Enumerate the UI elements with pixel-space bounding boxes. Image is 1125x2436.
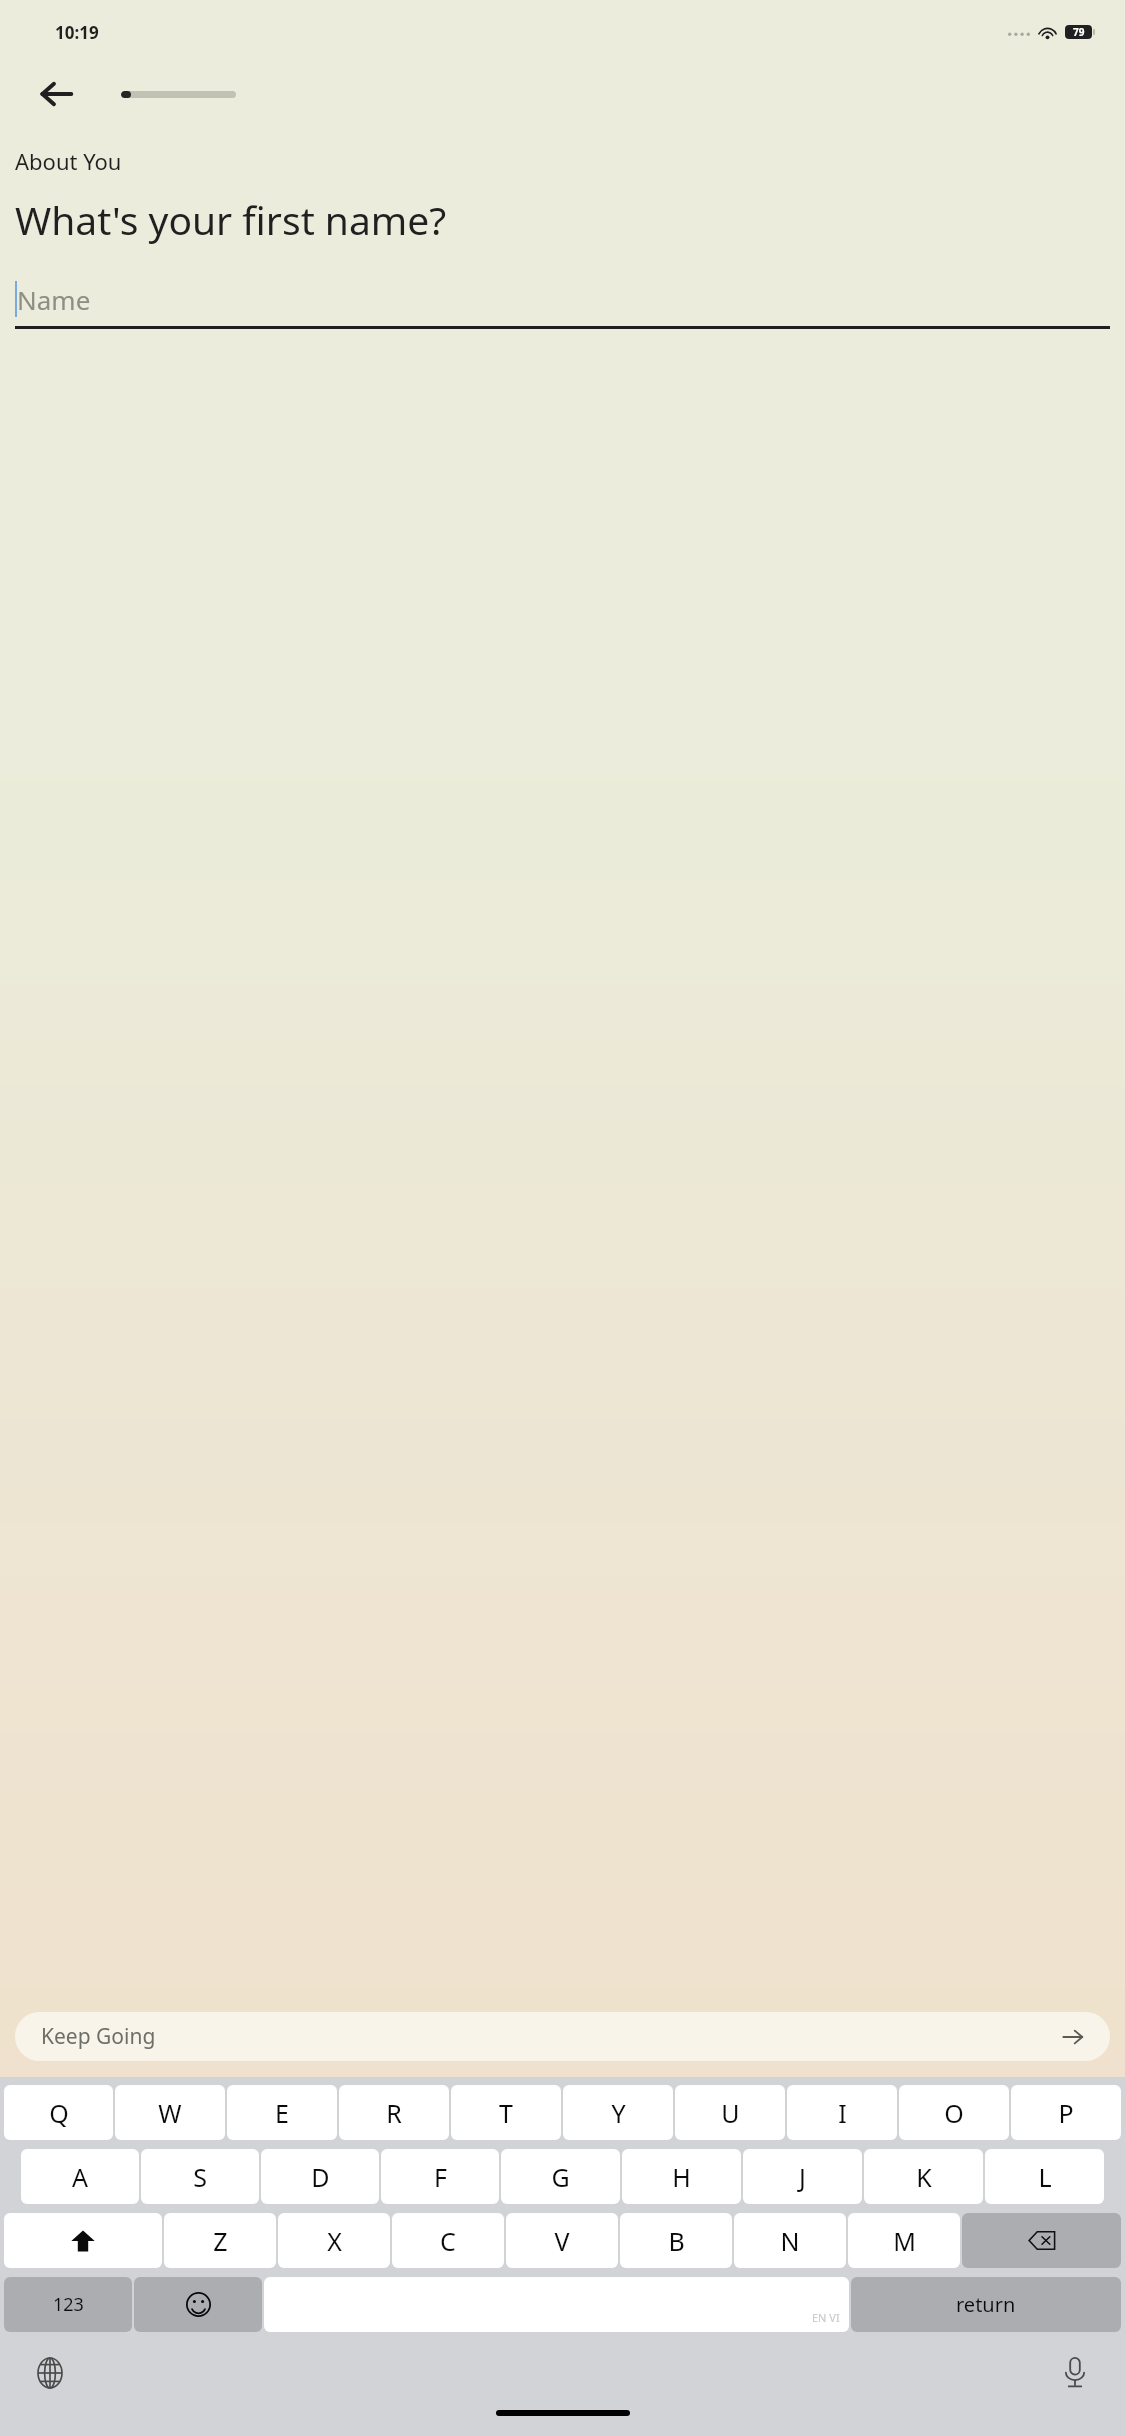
staticText: V [554, 2224, 570, 2258]
staticText: L [1038, 2160, 1052, 2194]
staticText: Name [17, 282, 91, 317]
button[interactable]: Emoji [134, 2277, 262, 2332]
button[interactable]: Z [164, 2213, 276, 2268]
staticText: D [311, 2160, 330, 2194]
button[interactable]: return [851, 2277, 1121, 2332]
staticText: R [386, 2096, 402, 2130]
button[interactable]: F [381, 2149, 499, 2204]
staticText: M [893, 2224, 916, 2258]
button[interactable]: N [734, 2213, 846, 2268]
staticText: N [780, 2224, 800, 2258]
button[interactable]: J [743, 2149, 862, 2204]
staticText: C [440, 2224, 456, 2258]
staticText: H [672, 2160, 691, 2194]
button[interactable]: I [787, 2085, 897, 2140]
button[interactable]: Dictate [1049, 2347, 1101, 2399]
staticText: T [499, 2096, 513, 2130]
button[interactable]: G [501, 2149, 620, 2204]
button[interactable]: H [622, 2149, 741, 2204]
staticText: return [956, 2291, 1016, 2318]
button[interactable]: Shift [4, 2213, 162, 2268]
button[interactable]: P [1011, 2085, 1121, 2140]
staticText: O [944, 2096, 964, 2130]
staticText: Z [213, 2224, 228, 2258]
button[interactable]: W [115, 2085, 225, 2140]
staticText: S [193, 2160, 207, 2194]
button[interactable]: S [141, 2149, 259, 2204]
staticText: What's your first name? [15, 193, 447, 246]
staticText: W [158, 2096, 182, 2130]
staticText: X [327, 2224, 342, 2258]
staticText: EN VI [812, 2310, 840, 2325]
staticText: Y [611, 2096, 626, 2130]
button[interactable]: Change keyboard [24, 2347, 76, 2399]
staticText: J [799, 2160, 806, 2194]
button[interactable]: Back [30, 68, 82, 120]
button[interactable]: O [899, 2085, 1009, 2140]
button[interactable]: A [21, 2149, 139, 2204]
staticText: A [72, 2160, 88, 2194]
button[interactable]: Keep Going [15, 2012, 1110, 2061]
staticText: I [838, 2096, 847, 2130]
button[interactable]: U [675, 2085, 785, 2140]
button[interactable]: X [278, 2213, 390, 2268]
staticText: G [551, 2160, 570, 2194]
staticText: P [1058, 2096, 1074, 2130]
button[interactable]: K [864, 2149, 983, 2204]
button[interactable]: B [620, 2213, 732, 2268]
button[interactable]: M [848, 2213, 960, 2268]
staticText: U [721, 2096, 740, 2130]
button[interactable]: T [451, 2085, 561, 2140]
staticText: Keep Going [41, 2022, 156, 2051]
staticText: About You [15, 146, 122, 176]
button[interactable]: E [227, 2085, 337, 2140]
staticText: 123 [53, 2292, 84, 2317]
staticText: K [916, 2160, 932, 2194]
button[interactable]: Backspace [962, 2213, 1121, 2268]
button[interactable]: L [985, 2149, 1104, 2204]
button[interactable]: D [261, 2149, 379, 2204]
staticText: E [275, 2096, 289, 2130]
button[interactable]: Q [4, 2085, 113, 2140]
button[interactable]: Name [15, 276, 1110, 322]
staticText: 79 [1073, 25, 1085, 39]
staticText: F [434, 2160, 447, 2194]
staticText: 10:19 [55, 21, 99, 44]
button[interactable]: Y [563, 2085, 673, 2140]
button[interactable]: V [506, 2213, 618, 2268]
staticText: B [668, 2224, 685, 2258]
button[interactable]: 123 [4, 2277, 132, 2332]
button[interactable]: C [392, 2213, 504, 2268]
button[interactable]: R [339, 2085, 449, 2140]
staticText: Q [49, 2096, 69, 2130]
